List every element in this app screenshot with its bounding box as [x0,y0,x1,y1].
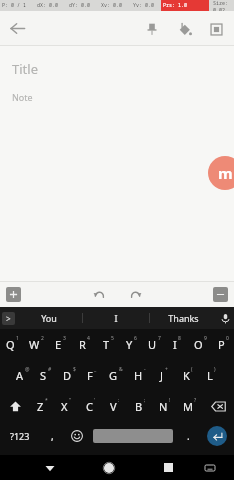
staticText: + [165,366,168,373]
button[interactable]: Space [93,429,173,443]
button[interactable]: Emoji [64,421,90,451]
button[interactable]: O [188,329,211,360]
staticText: 1 [16,335,19,342]
button[interactable]: Y [119,329,142,360]
staticText: # [48,366,52,373]
staticText: @ [25,366,30,373]
button[interactable]: Redo [123,282,147,306]
button[interactable]: Pin note [136,13,168,45]
button[interactable]: Enter [207,426,227,446]
button[interactable]: More options [213,287,228,302]
staticText: F [87,368,93,383]
staticText: T [103,337,110,352]
button[interactable]: Q [0,329,24,360]
button[interactable]: Z [30,391,54,421]
button[interactable]: A [11,360,34,391]
button[interactable]: R [72,329,96,360]
staticText: m [218,163,233,183]
staticText: O [194,337,203,352]
button[interactable]: D [57,360,80,391]
staticText: R [79,337,86,352]
button[interactable]: Back [0,11,35,46]
staticText: Q [6,337,15,352]
button[interactable]: Archive [200,13,232,45]
staticText: * [45,397,48,404]
staticText: 8 [178,335,181,342]
button[interactable]: K [175,360,199,391]
staticText: 0 [226,335,229,342]
staticText: P [218,337,225,352]
button[interactable]: G [103,360,127,391]
button[interactable]: U [142,329,165,360]
button[interactable]: , [40,421,64,451]
button[interactable]: E [48,329,72,360]
staticText: K [183,368,190,383]
staticText: W [29,337,40,352]
button[interactable]: Thanks [150,307,216,329]
button[interactable]: Add [6,287,21,302]
button[interactable]: Switch keyboard [199,457,221,479]
staticText: J [160,368,164,383]
staticText: 4 [87,335,90,342]
staticText: Y [126,337,133,352]
button[interactable]: W [24,329,48,360]
button[interactable]: V [102,391,127,421]
staticText: & [119,366,123,373]
staticText: 2 [41,335,44,342]
button[interactable]: ?123 [0,421,40,451]
button[interactable]: T [96,329,119,360]
button[interactable]: . [176,421,200,451]
button[interactable]: Voice input [216,307,234,329]
button[interactable]: Shift [0,391,30,421]
staticText: M [183,399,193,414]
button[interactable]: Back [37,455,63,480]
button[interactable]: I [165,329,188,360]
staticText: ) [214,366,216,373]
button[interactable]: I [83,307,149,329]
staticText: G [109,368,118,383]
button[interactable]: Reminder [168,13,200,45]
staticText: S [40,368,47,383]
button[interactable]: You [16,307,82,329]
button[interactable]: Undo [87,282,111,306]
staticText: I [173,337,177,352]
staticText: _ [94,366,97,373]
staticText: A [16,368,24,383]
staticText: , [51,429,54,443]
staticText: ? [194,397,197,404]
button[interactable]: M [177,391,202,421]
button[interactable]: More suggestions [0,307,16,329]
button[interactable]: S [34,360,57,391]
staticText: dX: 0.0 [37,2,59,9]
button[interactable]: Home [96,455,122,480]
button[interactable]: F [80,360,103,391]
staticText: " [69,397,72,404]
staticText: Prs: 1.0 [163,2,188,9]
staticText: 3 [63,335,66,342]
button[interactable]: Backspace [202,391,234,421]
button[interactable]: P [211,329,234,360]
staticText: ?123 [10,430,30,442]
button[interactable]: B [127,391,152,421]
button[interactable]: N [152,391,177,421]
staticText: 9 [204,335,207,342]
staticText: dY: 0.0 [69,2,91,9]
button[interactable]: J [151,360,175,391]
staticText: $ [73,366,76,373]
button[interactable]: X [54,391,78,421]
button[interactable]: Recent apps [155,455,181,480]
staticText: ' [94,397,96,404]
staticText: I [114,312,118,324]
staticText: Note [12,91,33,103]
button[interactable]: L [199,360,223,391]
staticText: 6 [134,335,137,342]
staticText: Yv: 0.0 [133,2,155,9]
staticText: Xv: 0.0 [101,2,123,9]
staticText: L [207,368,213,383]
staticText: D [63,368,72,383]
staticText: 7 [158,335,161,342]
button[interactable]: H [127,360,151,391]
staticText: H [134,368,143,383]
button[interactable]: C [78,391,102,421]
staticText: : [118,397,120,404]
